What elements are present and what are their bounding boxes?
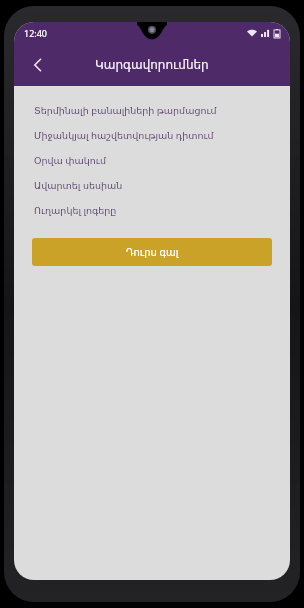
button[interactable]: Օրվա փակում — [14, 148, 290, 173]
button[interactable]: Միջանկյալ հաշվետվության դիտում — [14, 123, 290, 148]
button[interactable]: Դուրս գալ — [32, 238, 272, 266]
staticText: Տերմինալի բանալիների թարմացում — [34, 104, 217, 117]
button[interactable]: Ուղարկել լոգերը — [14, 198, 290, 223]
staticText: Օրվա փակում — [34, 154, 106, 167]
staticText: Ուղարկել լոգերը — [34, 204, 117, 217]
button[interactable]: Ավարտել սեսիան — [14, 173, 290, 198]
staticText: 12:40 — [24, 27, 48, 39]
staticText: Դուրս գալ — [126, 245, 179, 259]
staticText: Ավարտել սեսիան — [34, 179, 123, 192]
button[interactable]: Տերմինալի բանալիների թարմացում — [14, 98, 290, 123]
staticText: Միջանկյալ հաշվետվության դիտում — [34, 129, 214, 142]
staticText: Կարգավորումներ — [95, 58, 209, 72]
button[interactable]: Back — [18, 45, 58, 85]
